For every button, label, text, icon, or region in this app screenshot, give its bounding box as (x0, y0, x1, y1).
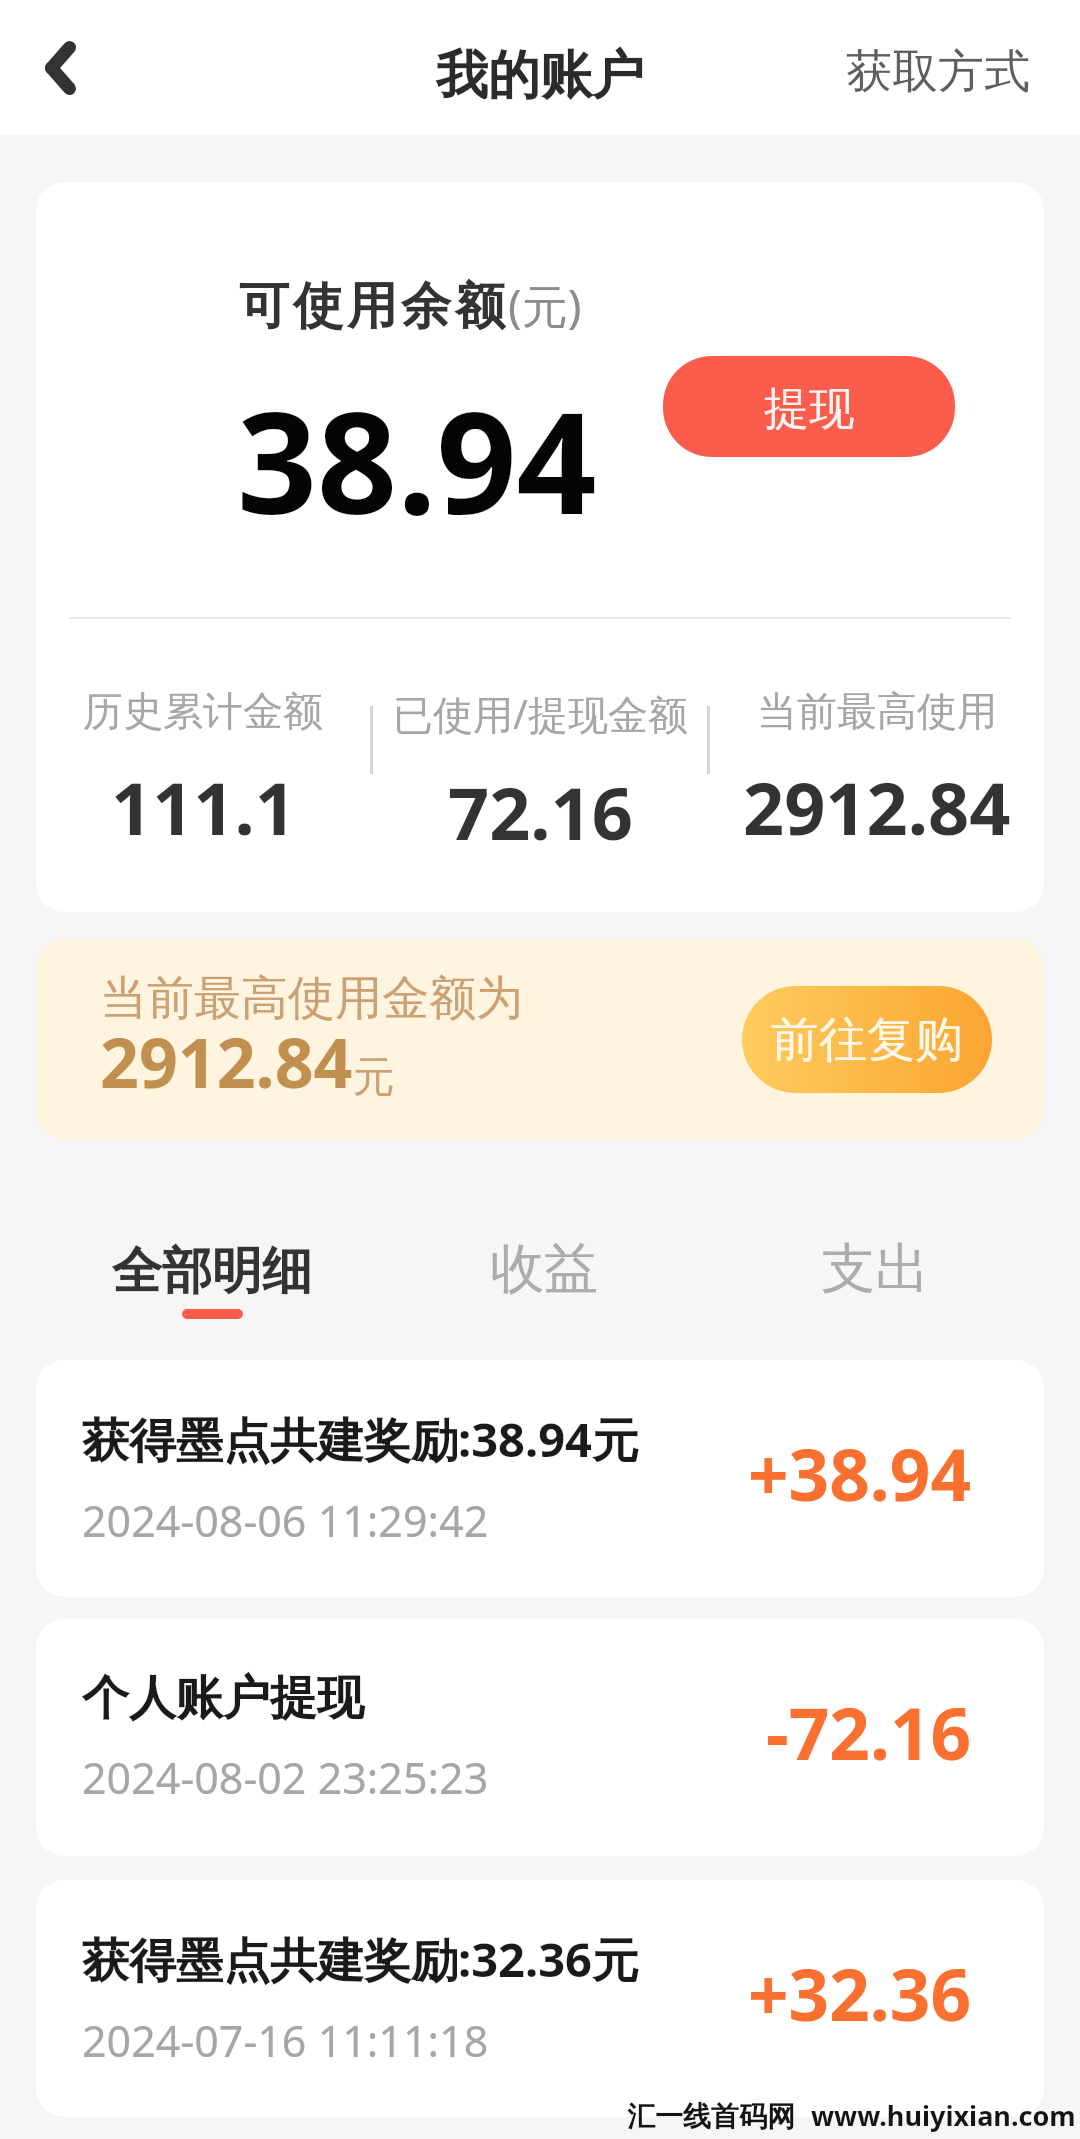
staticText: 2912.84 (743, 758, 1011, 856)
staticText: 获取方式 (846, 43, 1030, 101)
button[interactable]: 提现 (663, 356, 955, 457)
staticText: (元) (508, 274, 582, 337)
button[interactable]: 前往复购 (742, 986, 992, 1093)
button[interactable]: 获得墨点共建奖励:38.94元 (36, 1360, 1044, 1597)
staticText: 2912.84 (100, 1015, 353, 1108)
staticText: 前往复购 (771, 1010, 963, 1070)
staticText: 2024-07-16 11:11:18 (82, 2011, 489, 2070)
button[interactable]: 支出 (709, 1234, 1040, 1330)
staticText: 当前最高使用 (757, 686, 997, 736)
staticText: www.huiyixian.com (811, 2097, 1076, 2134)
staticText: +32.36 (748, 1945, 972, 2042)
staticText: 历史累计金额 (83, 686, 323, 736)
staticText: 支出 (821, 1235, 929, 1303)
staticText: 我的账户 (436, 43, 644, 109)
button[interactable]: 个人账户提现 (36, 1619, 1044, 1856)
staticText: -72.16 (766, 1684, 972, 1781)
staticText: 个人账户提现 (82, 1669, 364, 1728)
staticText: 获得墨点共建奖励:38.94元 (82, 1407, 639, 1471)
staticText: 72.16 (448, 763, 633, 861)
staticText: 收益 (490, 1235, 598, 1303)
button[interactable]: 获得墨点共建奖励:32.36元 (36, 1880, 1044, 2117)
staticText: 元 (353, 1051, 395, 1104)
staticText: 38.94 (237, 364, 597, 555)
staticText: 2024-08-06 11:29:42 (82, 1491, 489, 1550)
staticText: 2024-08-02 23:25:23 (82, 1748, 489, 1807)
button[interactable]: 获取方式 (816, 25, 1080, 119)
staticText: 提现 (764, 381, 854, 438)
staticText: +38.94 (748, 1425, 972, 1522)
staticText: 全部明细 (112, 1240, 312, 1303)
staticText: 111.1 (111, 758, 296, 856)
staticText: 获得墨点共建奖励:32.36元 (82, 1927, 639, 1991)
staticText: 可使用余额 (237, 275, 507, 338)
button[interactable]: 收益 (378, 1234, 709, 1330)
button[interactable]: 全部明细 (46, 1234, 378, 1325)
button[interactable]: Back (12, 20, 108, 116)
staticText: 汇一线首码网 (627, 2099, 795, 2134)
staticText: 当前最高使用金额为 (100, 969, 523, 1028)
staticText: 已使用/提现金额 (393, 686, 688, 741)
